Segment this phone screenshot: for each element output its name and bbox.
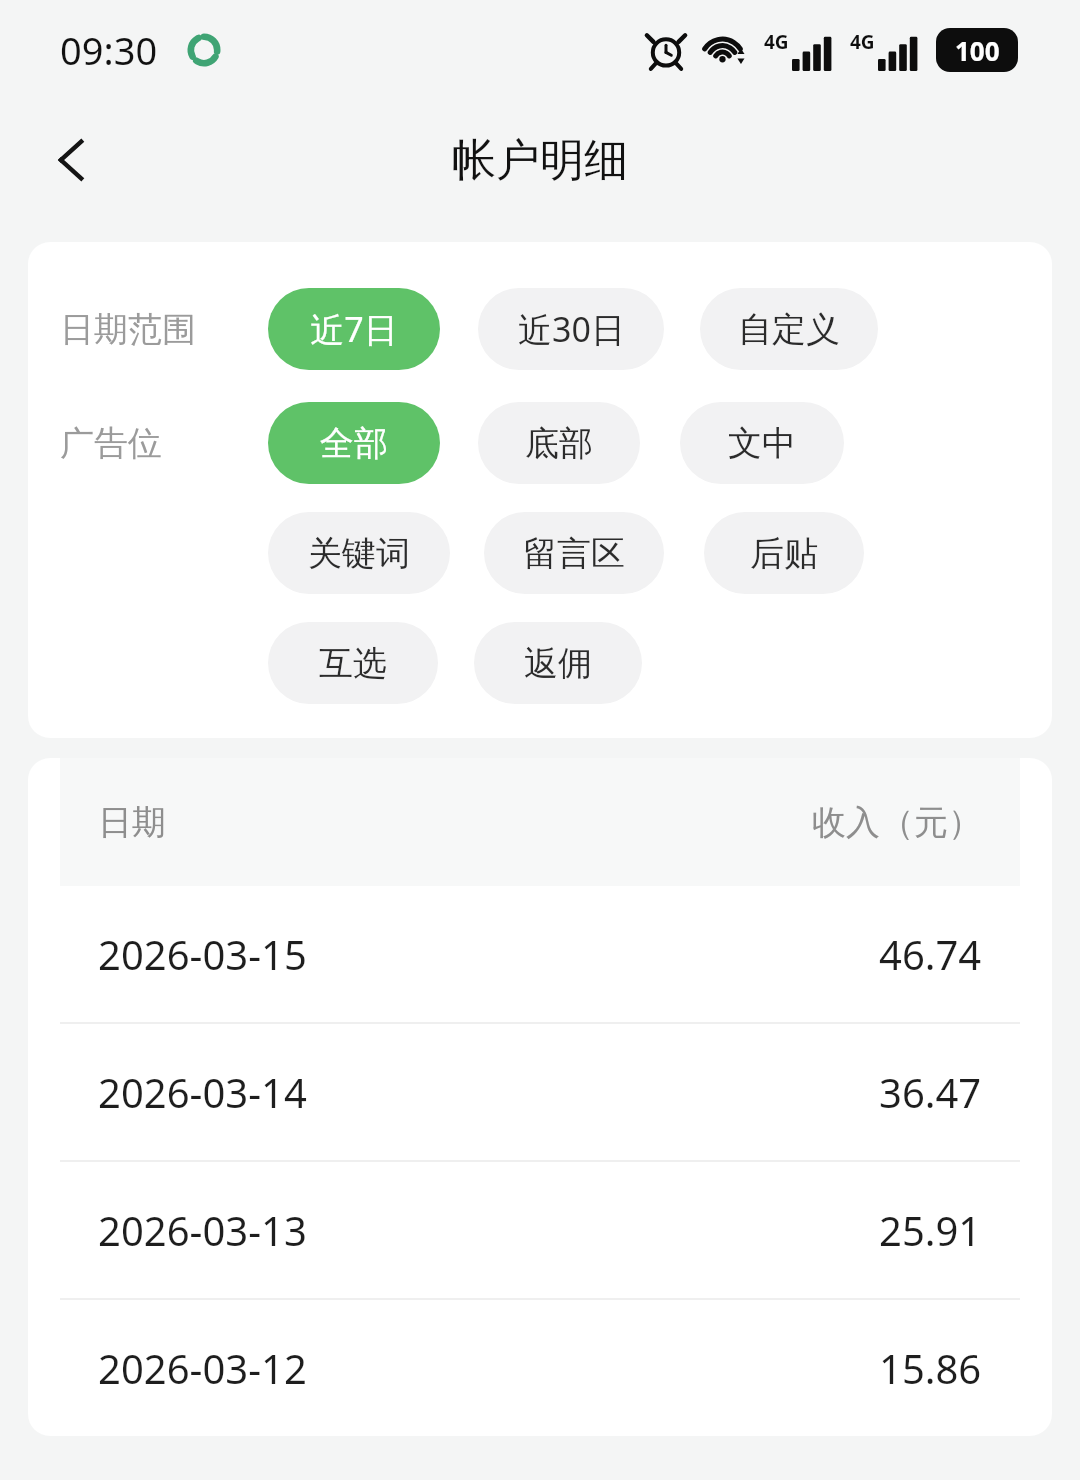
staticText: 返佣 [524, 642, 592, 685]
button[interactable]: 自定义 [700, 288, 878, 370]
staticText: 日期 [98, 801, 166, 844]
button[interactable]: Back [34, 122, 110, 198]
staticText: 近30日 [518, 306, 625, 352]
staticText: 2026-03-13 [98, 1203, 307, 1257]
button[interactable]: 后贴 [704, 512, 864, 594]
button[interactable]: 底部 [478, 402, 640, 484]
button[interactable]: 关键词 [268, 512, 450, 594]
button[interactable]: 留言区 [484, 512, 664, 594]
staticText: 后贴 [750, 532, 818, 575]
staticText: 底部 [525, 422, 593, 465]
staticText: 25.91 [879, 1203, 982, 1257]
staticText: 36.47 [879, 1065, 982, 1119]
staticText: 4G [850, 29, 875, 55]
staticText: 2026-03-12 [98, 1341, 307, 1395]
button[interactable]: 2026-03-12 [28, 1300, 1052, 1436]
staticText: 留言区 [523, 532, 625, 575]
staticText: 自定义 [738, 308, 840, 351]
staticText: 46.74 [879, 927, 982, 981]
button[interactable]: 近7日 [268, 288, 440, 370]
staticText: 广告位 [60, 422, 162, 465]
button[interactable]: 互选 [268, 622, 438, 704]
staticText: 近7日 [310, 306, 398, 352]
staticText: 全部 [320, 422, 388, 465]
staticText: 15.86 [879, 1341, 982, 1395]
staticText: 4G [764, 29, 789, 55]
button[interactable]: 返佣 [474, 622, 642, 704]
button[interactable]: 2026-03-13 [28, 1162, 1052, 1298]
staticText: 收入（元） [812, 801, 982, 844]
staticText: 2026-03-15 [98, 927, 307, 981]
staticText: 关键词 [308, 532, 410, 575]
staticText: 文中 [728, 422, 796, 465]
staticText: 2026-03-14 [98, 1065, 307, 1119]
button[interactable]: 2026-03-14 [28, 1024, 1052, 1160]
button[interactable]: 文中 [680, 402, 844, 484]
staticText: 互选 [319, 642, 387, 685]
button[interactable]: 2026-03-15 [28, 886, 1052, 1022]
button[interactable]: 近30日 [478, 288, 664, 370]
staticText: 100 [955, 33, 1000, 68]
staticText: 日期范围 [60, 308, 196, 351]
staticText: 09:30 [60, 24, 158, 76]
button[interactable]: 全部 [268, 402, 440, 484]
staticText: 帐户明细 [452, 133, 628, 188]
